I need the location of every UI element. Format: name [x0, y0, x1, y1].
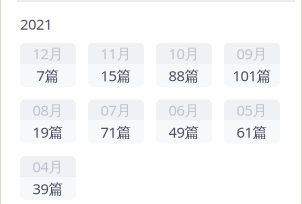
button[interactable]: 05月: [224, 99, 280, 143]
staticText: 11月: [100, 44, 131, 63]
staticText: 88篇: [168, 66, 199, 85]
staticText: 19篇: [32, 122, 63, 142]
staticText: 09月: [236, 44, 267, 63]
staticText: 61篇: [236, 122, 267, 142]
button[interactable]: 08月: [20, 99, 76, 143]
staticText: 05月: [236, 100, 267, 120]
staticText: 08月: [32, 100, 63, 120]
button[interactable]: 06月: [156, 99, 212, 143]
staticText: 10月: [168, 44, 199, 63]
staticText: 15篇: [100, 66, 131, 85]
staticText: 06月: [168, 100, 199, 120]
button[interactable]: 07月: [88, 99, 144, 143]
button[interactable]: 11月: [88, 43, 144, 87]
staticText: 71篇: [100, 122, 131, 142]
staticText: 7篇: [36, 66, 59, 85]
button[interactable]: 04月: [20, 156, 76, 200]
staticText: 04月: [32, 157, 63, 176]
button[interactable]: 10月: [156, 43, 212, 87]
button[interactable]: 12月: [20, 43, 76, 87]
staticText: 12月: [32, 44, 63, 63]
staticText: 2021: [20, 14, 52, 34]
staticText: 101篇: [232, 66, 271, 85]
staticText: 07月: [100, 100, 131, 120]
button[interactable]: 09月: [224, 43, 280, 87]
staticText: 49篇: [168, 122, 199, 142]
staticText: 39篇: [32, 179, 63, 198]
